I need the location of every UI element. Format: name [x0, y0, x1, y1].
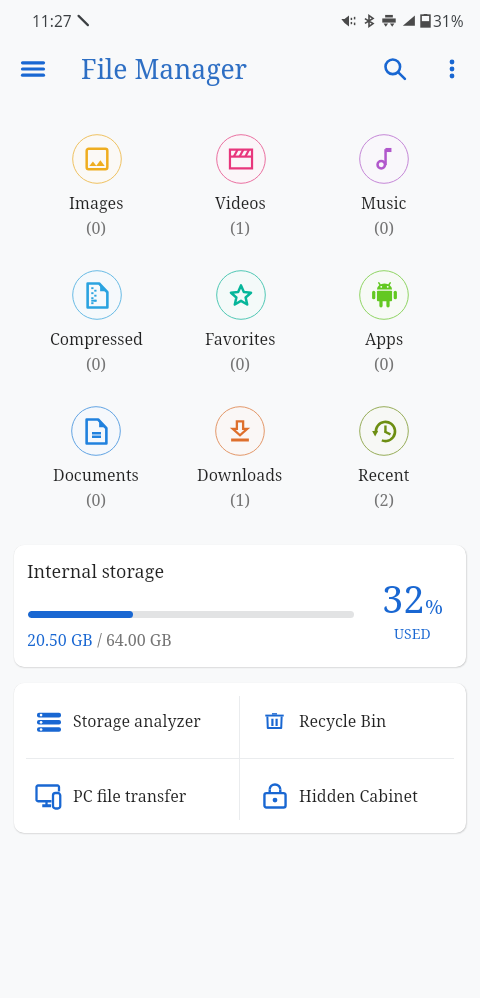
button[interactable]: Search — [372, 46, 418, 92]
staticText: Images — [69, 192, 124, 214]
staticText: / 64.00 GB — [93, 629, 172, 651]
button[interactable]: Storage analyzer — [14, 683, 240, 758]
staticText: (0) — [374, 217, 395, 239]
staticText: File Manager — [81, 51, 248, 87]
staticText: (2) — [374, 489, 395, 511]
staticText: Music — [361, 192, 407, 214]
button[interactable]: PC file transfer — [14, 759, 240, 833]
button[interactable]: Internal storage — [14, 545, 466, 667]
staticText: (1) — [230, 217, 251, 239]
button[interactable]: Downloads — [197, 406, 283, 511]
staticText: (1) — [230, 489, 251, 511]
staticText: % — [425, 593, 443, 620]
staticText: PC file transfer — [73, 785, 187, 807]
staticText: Hidden Cabinet — [299, 785, 418, 807]
button[interactable]: Music — [359, 134, 409, 239]
staticText: Documents — [53, 464, 139, 486]
button[interactable]: Hidden Cabinet — [240, 759, 466, 833]
staticText: Downloads — [197, 464, 283, 486]
staticText: Recycle Bin — [299, 710, 387, 732]
staticText: (0) — [86, 353, 107, 375]
staticText: (0) — [86, 489, 107, 511]
button[interactable]: Compressed — [50, 270, 143, 375]
staticText: 20.50 GB — [27, 629, 93, 651]
button[interactable]: Recycle Bin — [240, 683, 466, 758]
staticText: Internal storage — [27, 559, 165, 584]
staticText: Videos — [215, 192, 266, 214]
staticText: Recent — [358, 464, 410, 486]
staticText: 11:27 — [32, 10, 72, 31]
button[interactable]: Documents — [53, 406, 139, 511]
button[interactable]: Recent — [358, 406, 410, 511]
staticText: (0) — [230, 353, 251, 375]
button[interactable]: Videos — [215, 134, 266, 239]
button[interactable]: More options — [429, 46, 475, 92]
staticText: USED — [394, 624, 431, 643]
staticText: (0) — [86, 217, 107, 239]
staticText: Favorites — [205, 328, 276, 350]
staticText: Storage analyzer — [73, 710, 201, 732]
staticText: (0) — [374, 353, 395, 375]
button[interactable]: Favorites — [205, 270, 276, 375]
staticText: Apps — [365, 328, 404, 350]
staticText: 31% — [433, 10, 464, 31]
staticText: Compressed — [50, 328, 143, 350]
button[interactable]: Apps — [359, 270, 409, 375]
button[interactable]: Menu — [10, 46, 56, 92]
staticText: 32 — [382, 572, 425, 624]
button[interactable]: Images — [69, 134, 124, 239]
